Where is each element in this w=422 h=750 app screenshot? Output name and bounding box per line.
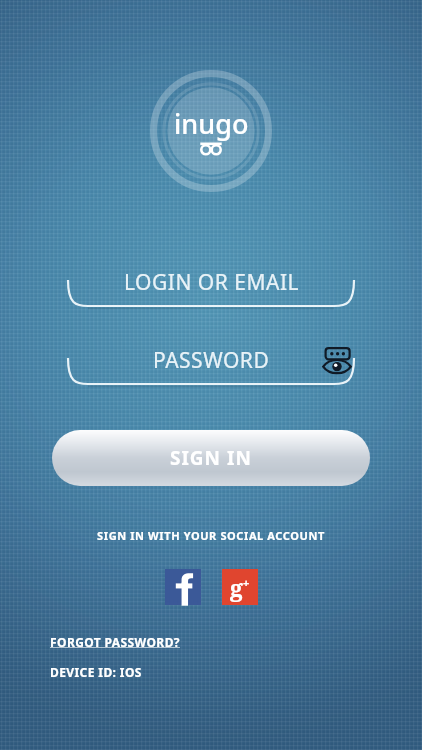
staticText: LOGIN OR EMAIL <box>124 268 299 297</box>
staticText: DEVICE ID: IOS <box>50 664 142 680</box>
button[interactable]: Show password <box>320 344 354 378</box>
button[interactable]: PASSWORD <box>60 340 362 392</box>
staticText: FORGOT PASSWORD? <box>50 634 180 650</box>
button[interactable]: LOGIN OR EMAIL <box>60 262 362 314</box>
button[interactable]: Sign in with Google Plus <box>222 569 258 605</box>
staticText: SIGN IN <box>170 445 252 471</box>
button[interactable]: SIGN IN <box>52 430 370 486</box>
staticText: g <box>230 572 243 603</box>
button[interactable]: FORGOT PASSWORD? <box>50 632 180 652</box>
other: inugo logo <box>152 72 270 190</box>
staticText: + <box>243 575 250 590</box>
button[interactable]: Sign in with Facebook <box>165 569 201 605</box>
staticText: inugo <box>174 105 249 142</box>
staticText: SIGN IN WITH YOUR SOCIAL ACCOUNT <box>97 528 325 543</box>
staticText: PASSWORD <box>153 346 270 375</box>
